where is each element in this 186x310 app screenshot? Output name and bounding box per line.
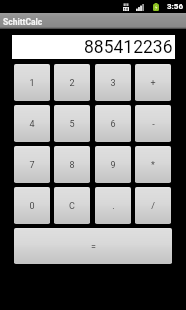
staticText: 4 [29, 119, 35, 130]
button[interactable]: 6 [95, 105, 131, 142]
button[interactable]: + [135, 64, 171, 101]
button[interactable]: 4 [14, 105, 50, 142]
staticText: 7 [29, 160, 35, 171]
staticText: C [69, 201, 75, 212]
staticText: 5 [69, 119, 75, 130]
staticText: = [91, 242, 96, 253]
button[interactable]: - [135, 105, 171, 142]
staticText: 0 [29, 201, 35, 212]
button[interactable]: * [135, 146, 171, 183]
button[interactable]: 1 [14, 64, 50, 101]
button[interactable]: 5 [54, 105, 90, 142]
button[interactable]: 9 [95, 146, 131, 183]
button[interactable]: 0 [14, 187, 50, 224]
staticText: 8 [69, 160, 75, 171]
staticText: 885412236 [84, 37, 173, 58]
staticText: SchittCalc [3, 17, 43, 27]
staticText: - [152, 119, 155, 130]
button[interactable]: 3 [95, 64, 131, 101]
staticText: 3 [110, 78, 116, 89]
staticText: 2 [69, 78, 75, 89]
button[interactable]: 7 [14, 146, 50, 183]
staticText: 9 [110, 160, 116, 171]
staticText: 6 [110, 119, 116, 130]
button[interactable]: . [95, 187, 131, 224]
button[interactable]: C [54, 187, 90, 224]
button[interactable]: = [14, 228, 172, 264]
staticText: + [150, 78, 156, 89]
staticText: * [151, 160, 155, 171]
staticText: 1 [29, 78, 35, 89]
staticText: / [151, 201, 155, 212]
button[interactable]: 8 [54, 146, 90, 183]
other: Mobile data [123, 3, 129, 11]
button[interactable]: 2 [54, 64, 90, 101]
staticText: 3:56 [167, 2, 184, 11]
button[interactable]: / [135, 187, 171, 224]
staticText: . [112, 201, 115, 212]
